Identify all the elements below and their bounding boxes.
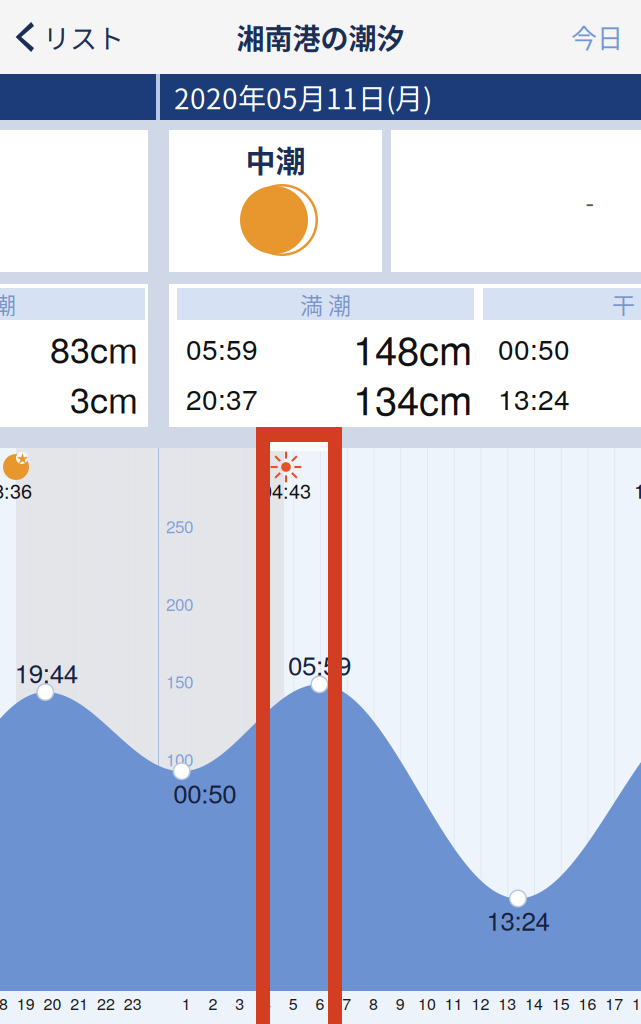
staticText: 10 <box>418 991 436 1014</box>
staticText: 湘南港の潮汐 <box>236 17 404 57</box>
staticText: 05:59 <box>288 646 351 683</box>
staticText: 100 <box>166 747 193 771</box>
staticText: 3 <box>235 991 244 1014</box>
staticText: 3cm <box>70 372 138 424</box>
staticText: 00:50 <box>498 328 570 368</box>
staticText: 2020年05月11日(月) <box>174 77 432 117</box>
staticText: 148cm <box>353 319 472 377</box>
staticText: 2 <box>208 991 217 1014</box>
button[interactable]: 今日 <box>513 0 641 74</box>
staticText: 5 <box>289 991 298 1014</box>
staticText: 中潮 <box>245 137 305 181</box>
staticText: 今日 <box>571 18 623 56</box>
staticText: 200 <box>166 591 193 616</box>
staticText: 18:36 <box>0 476 32 504</box>
staticText: 250 <box>166 514 193 538</box>
staticText: 150 <box>166 669 193 693</box>
staticText: 20 <box>43 991 61 1014</box>
staticText: 18 <box>0 991 8 1014</box>
staticText: 83cm <box>50 322 138 374</box>
staticText: 21 <box>70 991 88 1014</box>
staticText: 19:44 <box>15 653 78 691</box>
staticText: 05:59 <box>186 328 258 368</box>
staticText: 17 <box>605 991 623 1014</box>
staticText: 23 <box>124 991 142 1014</box>
staticText: - <box>585 182 594 220</box>
staticText: 18 <box>632 991 641 1014</box>
staticText: 22 <box>97 991 115 1014</box>
staticText: 7 <box>342 991 351 1014</box>
staticText: 134cm <box>353 369 472 427</box>
staticText: 13:24 <box>498 378 570 418</box>
staticText: 13 <box>498 991 516 1014</box>
staticText: 11 <box>445 991 463 1014</box>
staticText: 潮 <box>0 287 16 321</box>
staticText: 9 <box>396 991 405 1014</box>
staticText: 満 潮 <box>300 287 351 321</box>
staticText: 14 <box>525 991 543 1014</box>
staticText: 13:24 <box>486 901 549 938</box>
staticText: 4 <box>262 991 271 1014</box>
staticText: 00:50 <box>173 774 236 811</box>
staticText: 1 <box>634 476 641 504</box>
staticText: 16 <box>578 991 596 1014</box>
staticText: 8 <box>369 991 378 1014</box>
staticText: 19 <box>17 991 35 1014</box>
staticText: リスト <box>43 17 124 57</box>
staticText: 1 <box>182 991 191 1014</box>
staticText: 20:37 <box>186 378 258 418</box>
staticText: 12 <box>471 991 489 1014</box>
staticText: 干 汐 <box>612 287 641 321</box>
staticText: 15 <box>552 991 570 1014</box>
button[interactable]: リスト <box>0 0 172 74</box>
staticText: 6 <box>315 991 324 1014</box>
staticText: 04:43 <box>261 476 311 504</box>
